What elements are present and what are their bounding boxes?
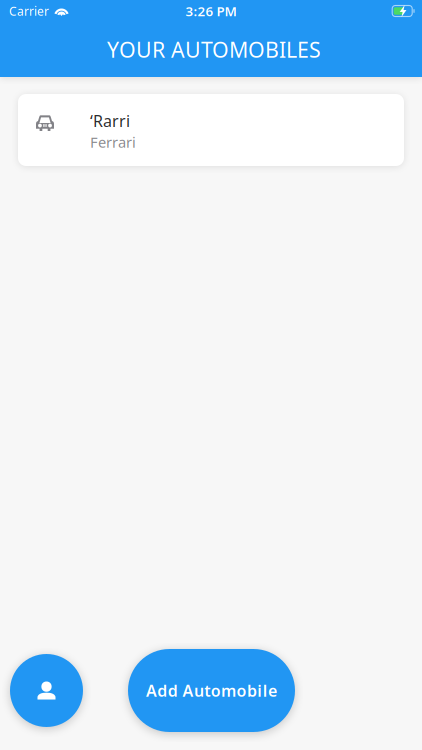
staticText: Add Automobile [146, 680, 277, 701]
staticText: Carrier [9, 3, 49, 19]
button[interactable]: Profile [10, 654, 83, 727]
button[interactable]: Add Automobile [128, 649, 295, 732]
staticText: 3:26 PM [185, 2, 236, 20]
staticText: YOUR AUTOMOBILES [107, 35, 321, 64]
staticText: ‘Rarri [90, 110, 130, 131]
button[interactable]: ‘Rarri [0, 77, 422, 166]
staticText: Ferrari [90, 132, 136, 152]
